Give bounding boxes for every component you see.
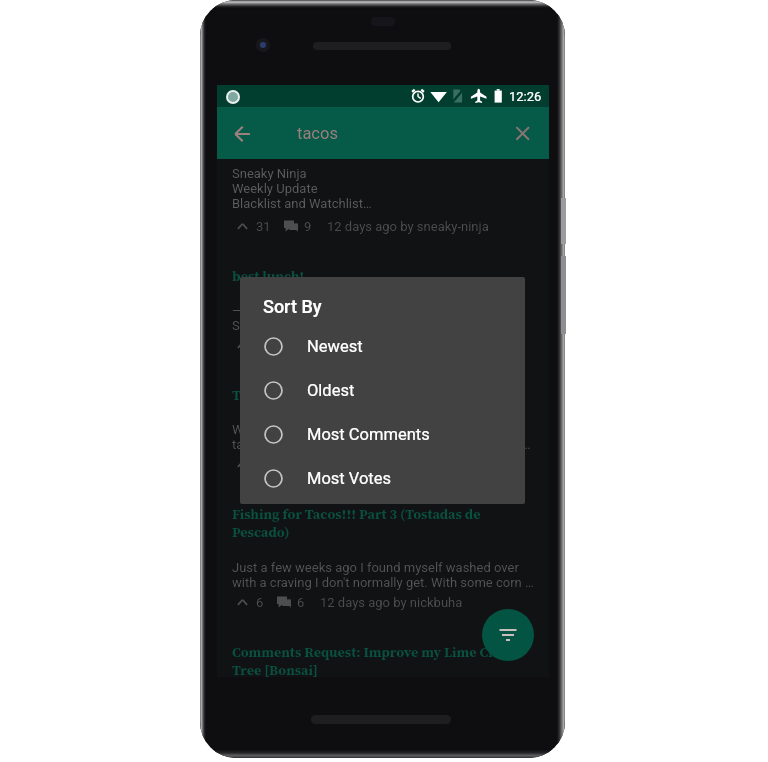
button[interactable]: Back — [227, 112, 263, 148]
staticText: 9 — [304, 219, 312, 234]
staticText: Sneaky Ninja Weekly Update Blacklist and… — [232, 166, 372, 211]
button[interactable]: Newest — [240, 324, 525, 368]
button[interactable]: Fishing for Tacos!!! Part 3 (Tostadas de… — [232, 504, 534, 612]
staticText: Oldest — [307, 381, 355, 400]
staticText: Just a few weeks ago I found myself wash… — [232, 560, 534, 590]
staticText: We went to a place downtown and ordered … — [232, 422, 534, 452]
button[interactable]: Oldest — [240, 368, 525, 412]
button[interactable]: Most Votes — [240, 456, 525, 500]
button[interactable]: Clear search — [505, 112, 541, 148]
staticText: 12 days ago by nickbuha — [320, 595, 463, 610]
button[interactable]: Comments Request: Improve my Lime Citrus… — [232, 642, 534, 677]
button[interactable]: Sort — [482, 609, 534, 661]
staticText: — So good, and the salsa verde was made … — [232, 303, 493, 333]
button[interactable]: Tacos — [232, 385, 534, 474]
staticText: Comments Request: Improve my Lime Citrus… — [232, 642, 534, 677]
staticText: 12 days ago by foodie — [320, 338, 447, 353]
staticText: 12 days ago by sneaky-ninja — [327, 219, 489, 234]
staticText: Most Votes — [307, 469, 392, 488]
staticText: 6 — [256, 595, 264, 610]
staticText: 6 — [297, 595, 305, 610]
button[interactable]: best lunch! — [232, 266, 534, 355]
button[interactable]: Most Comments — [240, 412, 525, 456]
staticText: Newest — [307, 337, 363, 356]
staticText: Most Comments — [307, 425, 430, 444]
staticText: 12:26 — [509, 89, 542, 104]
staticText: Fishing for Tacos!!! Part 3 (Tostadas de… — [232, 504, 534, 542]
staticText: Sort By — [263, 296, 322, 317]
staticText: tacos — [297, 124, 338, 143]
button[interactable]: Sneaky Ninja Weekly Update Blacklist and… — [232, 166, 534, 236]
staticText: 31 — [256, 219, 271, 234]
staticText: best lunch! — [232, 266, 305, 285]
staticText: Tacos — [232, 385, 269, 404]
